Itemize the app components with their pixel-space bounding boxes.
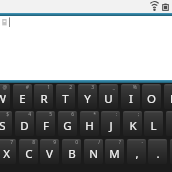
button[interactable]: Key P: [164, 84, 172, 109]
button[interactable]: Key H: [80, 111, 99, 136]
staticText: S: [0, 118, 6, 134]
button[interactable]: Key ,: [127, 139, 146, 164]
button[interactable]: Key L: [144, 111, 163, 136]
staticText: X: [3, 146, 10, 162]
staticText: *: [93, 111, 96, 118]
button[interactable]: Key R: [34, 84, 53, 109]
button[interactable]: Key E: [13, 84, 32, 109]
staticText: ;: [137, 111, 139, 118]
button[interactable]: Key O: [142, 84, 161, 109]
staticText: G: [63, 118, 72, 134]
button[interactable]: Key B: [62, 139, 81, 164]
staticText: 7: [10, 139, 13, 146]
button[interactable]: Key K: [123, 111, 142, 136]
staticText: 5: [49, 111, 52, 118]
staticText: D: [20, 118, 29, 134]
button[interactable]: Key I: [121, 84, 140, 109]
staticText: H: [85, 118, 94, 134]
staticText: W: [0, 91, 6, 107]
staticText: N: [89, 146, 98, 162]
staticText: 4: [28, 111, 31, 118]
staticText: ,: [135, 146, 139, 162]
staticText: E: [19, 91, 26, 107]
staticText: U: [104, 91, 113, 107]
button[interactable]: Key N: [84, 139, 103, 164]
staticText: %: [132, 84, 137, 91]
staticText: ?: [118, 139, 121, 146]
staticText: 9: [53, 139, 56, 146]
staticText: P: [170, 91, 172, 107]
button[interactable]: Key S: [0, 111, 12, 136]
button[interactable]: Key U: [99, 84, 118, 109]
staticText: R: [40, 91, 48, 107]
button[interactable]: Key F: [36, 111, 55, 136]
staticText: :: [115, 111, 117, 118]
button[interactable]: Key X: [0, 139, 16, 164]
button[interactable]: Key Y: [78, 84, 97, 109]
staticText: 2: [69, 84, 72, 91]
staticText: O: [147, 91, 156, 107]
button[interactable]: Key T: [56, 84, 75, 109]
button[interactable]: [0, 16, 172, 80]
staticText: $: [6, 111, 9, 118]
staticText: 6: [71, 111, 74, 118]
staticText: #: [25, 84, 29, 91]
staticText: B: [68, 146, 76, 162]
button[interactable]: Key V: [40, 139, 59, 164]
staticText: C: [25, 146, 33, 162]
staticText: L: [150, 118, 157, 134]
button[interactable]: Key D: [15, 111, 34, 136]
other: Wi-Fi signal: [149, 2, 160, 11]
staticText: J: [109, 118, 113, 134]
button[interactable]: Key .: [148, 139, 167, 164]
button[interactable]: Key G: [58, 111, 77, 136]
staticText: 3: [91, 84, 94, 91]
button[interactable]: Key !: [170, 139, 172, 164]
other: Battery: [162, 3, 169, 11]
staticText: /: [98, 139, 100, 146]
staticText: .: [156, 146, 160, 162]
button[interactable]: Key M: [105, 139, 124, 164]
staticText: 1: [47, 84, 50, 91]
staticText: _: [112, 84, 115, 91]
button[interactable]: Key W: [0, 84, 10, 109]
staticText: T: [62, 91, 69, 107]
staticText: F: [43, 118, 49, 134]
staticText: I: [129, 91, 133, 107]
staticText: 0: [75, 139, 78, 146]
staticText: -: [141, 139, 143, 146]
staticText: M: [109, 146, 120, 162]
staticText: Y: [84, 91, 91, 107]
button[interactable]: Key J: [101, 111, 120, 136]
button[interactable]: Key ': [166, 111, 172, 136]
staticText: K: [129, 118, 137, 134]
staticText: 8: [32, 139, 35, 146]
staticText: @: [2, 84, 7, 91]
button[interactable]: Key C: [19, 139, 38, 164]
staticText: V: [46, 146, 53, 162]
